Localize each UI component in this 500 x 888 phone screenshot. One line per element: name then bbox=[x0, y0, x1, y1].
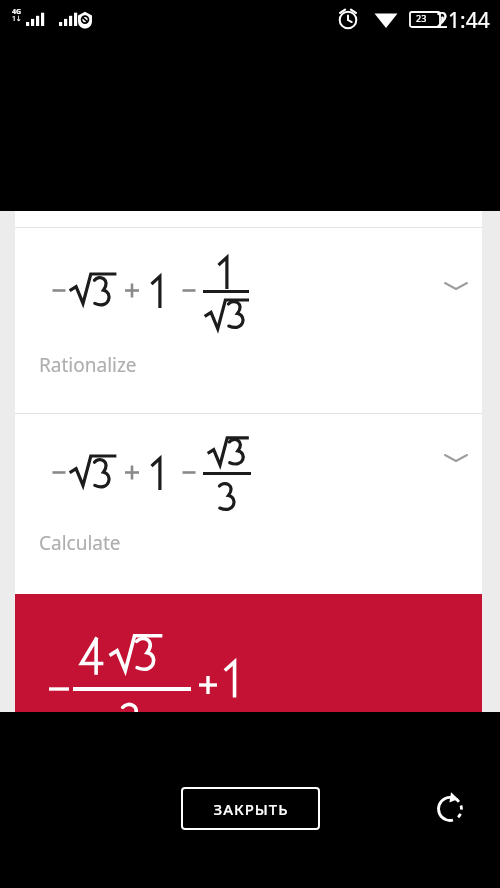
button[interactable]: Expand bbox=[438, 440, 474, 476]
staticText: Calculate bbox=[39, 530, 121, 556]
staticText: 23 bbox=[416, 12, 427, 24]
staticText: ЗАКРЫТЬ bbox=[213, 799, 289, 819]
staticText: 4G bbox=[12, 7, 22, 17]
button[interactable]: Calculate bbox=[15, 414, 482, 594]
button[interactable]: Rationalize bbox=[15, 228, 482, 413]
staticText: Rationalize bbox=[39, 352, 137, 378]
staticText: 21:44 bbox=[436, 6, 490, 35]
button[interactable] bbox=[15, 594, 482, 712]
button[interactable]: ЗАКРЫТЬ bbox=[181, 787, 320, 830]
button[interactable]: Rotate bbox=[432, 791, 468, 827]
button[interactable]: Expand bbox=[438, 268, 474, 304]
staticText: 1↓ bbox=[12, 14, 22, 24]
